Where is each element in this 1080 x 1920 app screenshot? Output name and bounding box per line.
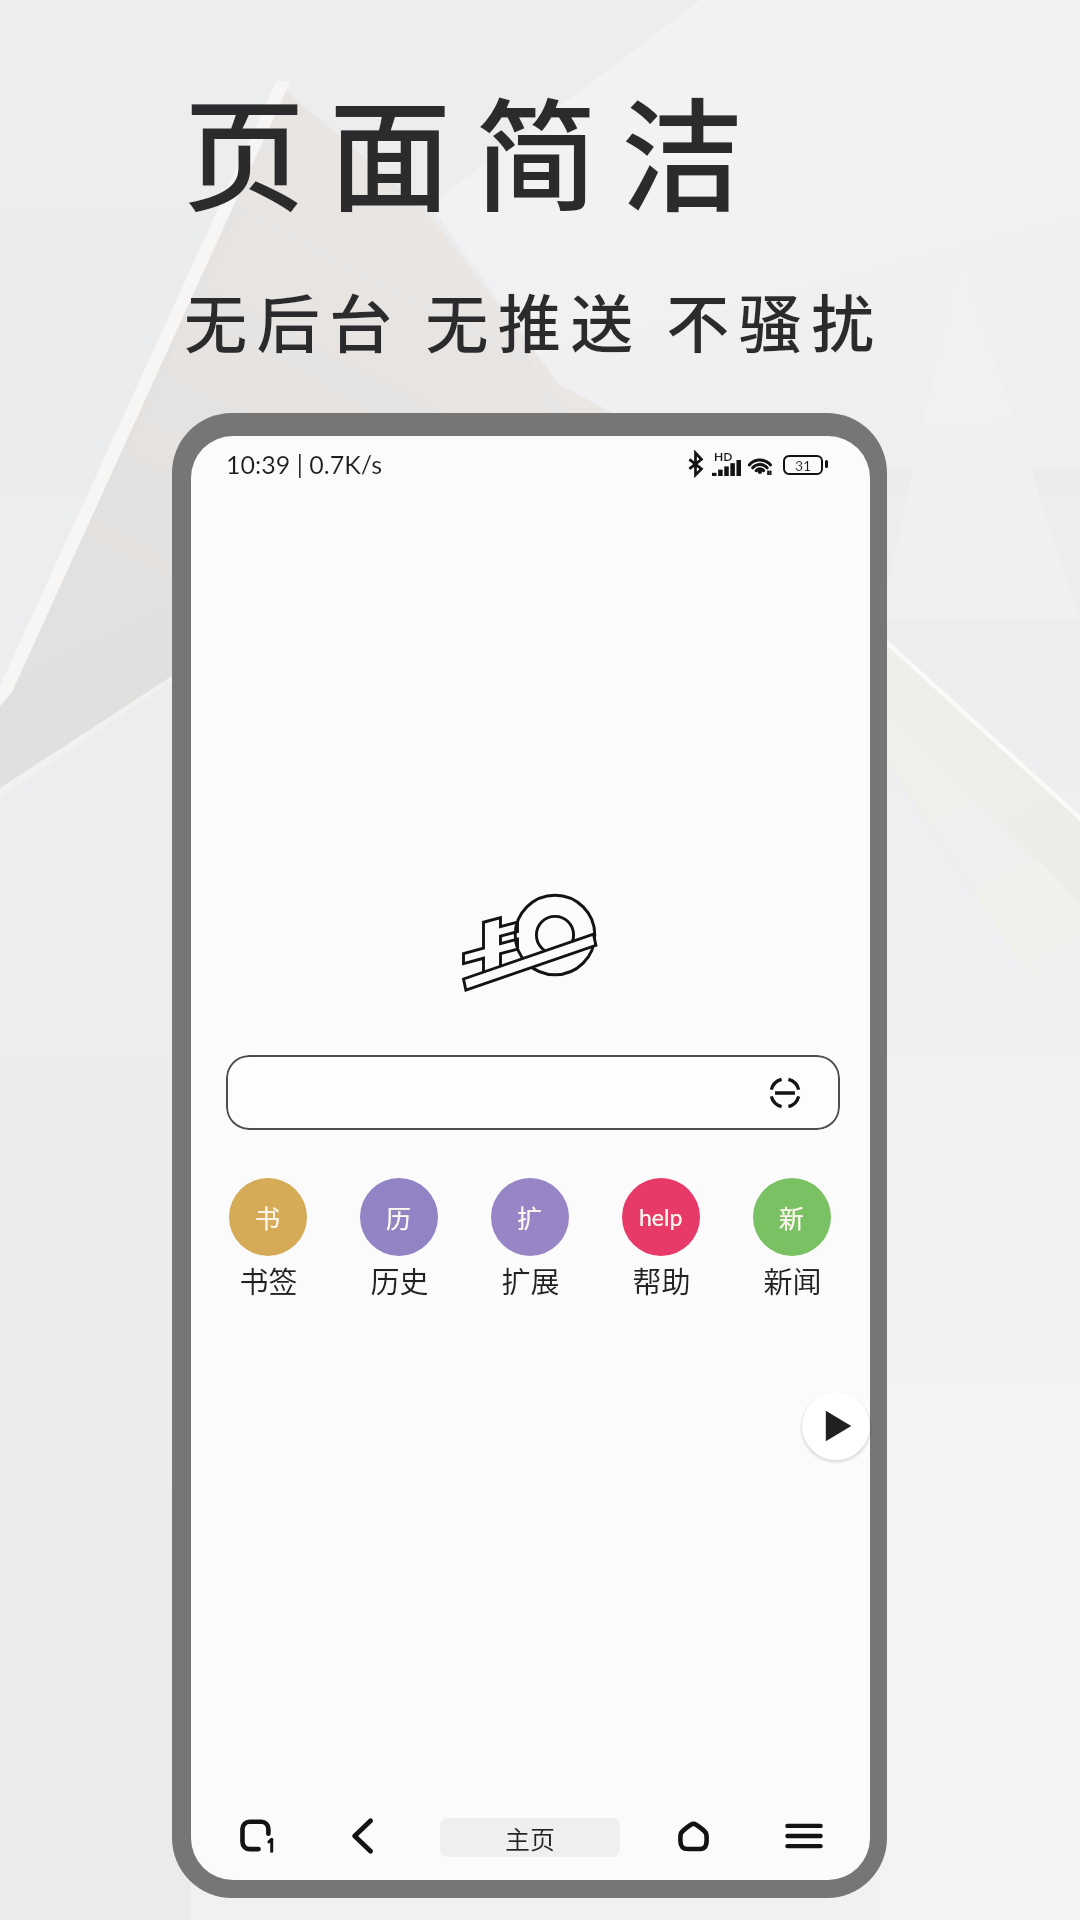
button[interactable]: Tabs, 1 open [224,1801,294,1871]
button[interactable]: Back [328,1801,398,1871]
staticText: 扩展 [501,1259,560,1301]
staticText: help [639,1203,683,1231]
button[interactable]: Menu [769,1801,839,1871]
staticText: 书 [255,1199,281,1235]
button[interactable]: Scan QR code [226,1055,840,1130]
button[interactable]: 主页 [440,1818,620,1857]
staticText: 无后台 无推送 不骚扰 [184,274,884,365]
staticText: 新 [779,1199,805,1235]
staticText: 10:39 | 0.7K/s [226,449,382,479]
staticText: 31 [795,457,812,474]
button[interactable]: 新 [737,1173,847,1298]
staticText: 历史 [370,1259,429,1301]
button[interactable]: Play video [798,1388,874,1464]
staticText: 主页 [505,1820,556,1856]
button[interactable]: Scan QR code [765,1073,805,1113]
button[interactable]: help [606,1173,716,1298]
staticText: HD [714,449,733,463]
staticText: 新闻 [763,1259,822,1301]
button[interactable]: 扩 [475,1173,585,1298]
button[interactable]: 历 [344,1173,454,1298]
staticText: 页面简洁 [183,59,767,236]
staticText: 历 [386,1199,412,1235]
button[interactable]: 书 [213,1173,323,1298]
button[interactable]: Home [658,1801,728,1871]
staticText: 书签 [239,1259,298,1301]
staticText: 帮助 [632,1259,691,1301]
staticText: 扩 [517,1199,543,1235]
